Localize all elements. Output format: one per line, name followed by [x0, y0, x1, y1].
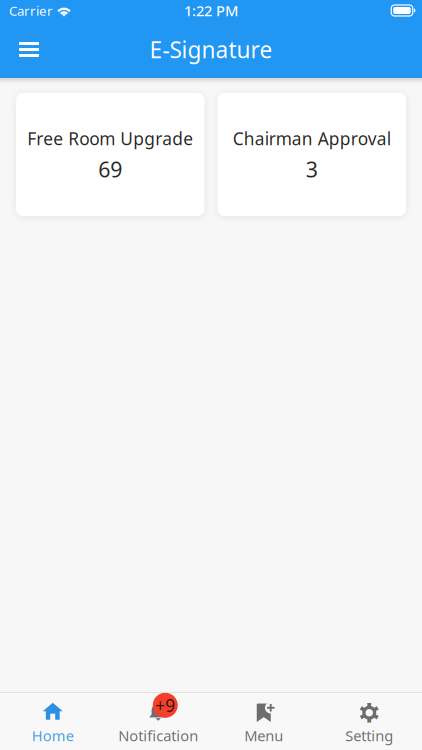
staticText: Carrier	[9, 2, 53, 19]
staticText: Notification	[118, 726, 198, 745]
button[interactable]: +9	[105, 692, 211, 749]
staticText: Menu	[244, 726, 283, 745]
button[interactable]: Home	[0, 692, 105, 749]
button[interactable]: Setting	[316, 692, 422, 749]
button[interactable]: Chairman Approval	[217, 93, 406, 216]
staticText: Setting	[345, 726, 393, 745]
staticText: +9	[155, 694, 175, 717]
staticText: 69	[98, 155, 122, 183]
staticText: Chairman Approval	[233, 127, 391, 150]
button[interactable]: Menu	[211, 692, 316, 749]
button[interactable]: Free Room Upgrade	[16, 93, 204, 216]
staticText: 1:22 PM	[184, 1, 238, 20]
staticText: Home	[32, 726, 74, 745]
staticText: 3	[306, 155, 318, 183]
staticText: Free Room Upgrade	[27, 127, 193, 150]
button[interactable]: Menu	[0, 28, 53, 71]
staticText: E-Signature	[149, 34, 272, 64]
